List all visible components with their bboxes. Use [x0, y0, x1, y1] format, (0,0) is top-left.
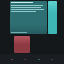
button[interactable]: Profile	[50, 58, 54, 61]
button[interactable]: Accent action	[48, 1, 57, 34]
button[interactable]: Library	[23, 58, 27, 61]
button[interactable]: Search	[37, 58, 41, 61]
button[interactable]	[10, 1, 47, 34]
button[interactable]: Highlight item	[14, 36, 30, 53]
button[interactable]: Home	[10, 58, 14, 61]
